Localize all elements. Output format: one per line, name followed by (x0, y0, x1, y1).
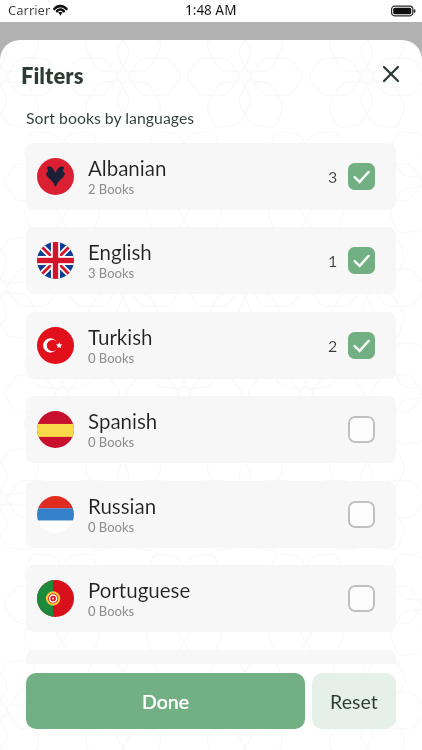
button[interactable]: Russian (26, 481, 396, 548)
button[interactable]: Not selected (348, 501, 375, 528)
staticText: Filters (21, 62, 84, 88)
staticText: Russian (88, 494, 157, 519)
staticText: Done (142, 690, 190, 713)
button[interactable]: Selected (348, 332, 375, 359)
staticText: Turkish (88, 325, 153, 350)
staticText: 3 Books (88, 265, 135, 281)
staticText: Portuguese (88, 578, 191, 603)
staticText: 0 Books (88, 519, 135, 535)
button[interactable]: English (26, 227, 396, 294)
staticText: 1:48 AM (185, 1, 237, 19)
staticText: 0 Books (88, 350, 135, 366)
staticText: English (88, 240, 152, 265)
button[interactable]: Turkish (26, 312, 396, 379)
button[interactable]: Selected (348, 163, 375, 190)
button[interactable]: Portuguese (26, 565, 396, 632)
staticText: Spanish (88, 409, 158, 434)
staticText: Sort books by languages (26, 108, 195, 127)
button[interactable]: Close (377, 61, 405, 89)
button[interactable]: Albanian (26, 143, 396, 210)
button[interactable]: Done (26, 673, 305, 729)
staticText: 1 (328, 251, 338, 270)
button[interactable]: Spanish (26, 396, 396, 463)
button[interactable]: Not selected (348, 416, 375, 443)
button[interactable]: Not selected (348, 585, 375, 612)
staticText: 2 Books (88, 181, 135, 197)
staticText: Carrier (8, 1, 51, 19)
staticText: 2 (328, 336, 338, 355)
staticText: 0 Books (88, 603, 135, 619)
button[interactable]: Selected (348, 247, 375, 274)
staticText: 3 (328, 167, 338, 186)
staticText: Albanian (88, 156, 167, 181)
button[interactable]: Reset (312, 673, 396, 729)
staticText: Reset (330, 690, 378, 713)
staticText: 0 Books (88, 434, 135, 450)
